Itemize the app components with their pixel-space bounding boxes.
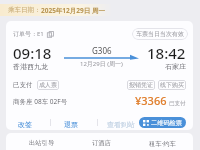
staticText: 线下购买 — [160, 81, 184, 89]
staticText: 已支付 — [169, 100, 186, 107]
staticText: G306 — [92, 45, 112, 56]
button[interactable]: 二维码检票 — [139, 117, 186, 128]
button[interactable]: 改签 — [17, 117, 33, 130]
button[interactable]: 退票 — [63, 117, 79, 130]
staticText: 退票 — [64, 120, 78, 129]
staticText: 09:18 — [13, 43, 52, 63]
button[interactable]: 订酒店 — [73, 133, 129, 150]
button[interactable]: 租车·约车 — [134, 133, 190, 150]
staticText: 石家庄 — [165, 62, 186, 71]
button[interactable]: 线下购买 — [158, 80, 186, 90]
button[interactable]: 出站引导 — [14, 133, 70, 150]
button[interactable]: 复制订单号 — [47, 31, 54, 38]
staticText: 车票当日当次有效 — [136, 30, 184, 38]
staticText: 商务座 08车 02F号 — [13, 97, 68, 106]
staticText: 订单号：E1 — [13, 30, 44, 38]
staticText: 二维码检票 — [151, 119, 182, 127]
button[interactable]: 车票当日当次有效 — [132, 28, 188, 40]
staticText: 出站引导 — [29, 139, 55, 147]
staticText: 订酒店 — [92, 139, 111, 147]
button[interactable]: 报销凭证 — [127, 80, 155, 90]
button[interactable]: 查看到站 — [106, 117, 136, 130]
staticText: 乘车日期： — [8, 6, 41, 14]
staticText: 成人票 — [39, 81, 57, 89]
staticText: 已支付 — [13, 81, 33, 89]
button[interactable]: 成人票 — [37, 80, 59, 90]
staticText: 12月29日 (周一) — [80, 60, 123, 68]
staticText: 香港西九龙 — [13, 62, 48, 71]
staticText: 报销凭证 — [129, 81, 153, 89]
staticText: 18:42 — [147, 43, 186, 63]
staticText: 2025年12月29日 周一 — [41, 6, 105, 15]
staticText: ¥3366 — [135, 93, 167, 108]
staticText: 租车·约车 — [149, 139, 176, 148]
staticText: 查看到站 — [107, 120, 135, 129]
staticText: 改签 — [18, 120, 32, 129]
